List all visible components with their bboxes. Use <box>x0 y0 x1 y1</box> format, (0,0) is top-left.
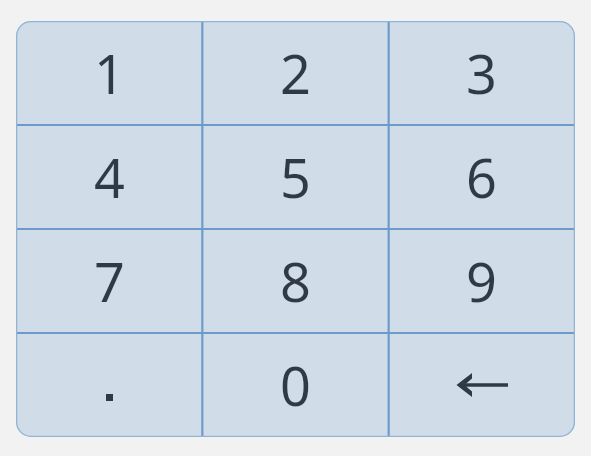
staticText: 2 <box>280 36 311 110</box>
button[interactable]: 7 <box>16 229 202 333</box>
button[interactable]: Backspace <box>388 333 575 437</box>
staticText: 1 <box>94 36 125 110</box>
staticText: 9 <box>466 244 497 318</box>
button[interactable]: 4 <box>16 125 202 229</box>
button[interactable]: 5 <box>202 125 388 229</box>
button[interactable]: 3 <box>388 21 575 125</box>
staticText: 7 <box>94 244 125 318</box>
button[interactable]: 9 <box>388 229 575 333</box>
button[interactable] <box>16 333 202 437</box>
staticText: 3 <box>466 36 497 110</box>
staticText: 8 <box>280 244 311 318</box>
staticText: 6 <box>466 140 497 214</box>
button[interactable]: 1 <box>16 21 202 125</box>
button[interactable]: 8 <box>202 229 388 333</box>
button[interactable]: 0 <box>202 333 388 437</box>
staticText: 4 <box>94 140 125 214</box>
staticText: 5 <box>280 140 311 214</box>
button[interactable]: 6 <box>388 125 575 229</box>
staticText: 0 <box>280 348 311 422</box>
button[interactable]: 2 <box>202 21 388 125</box>
